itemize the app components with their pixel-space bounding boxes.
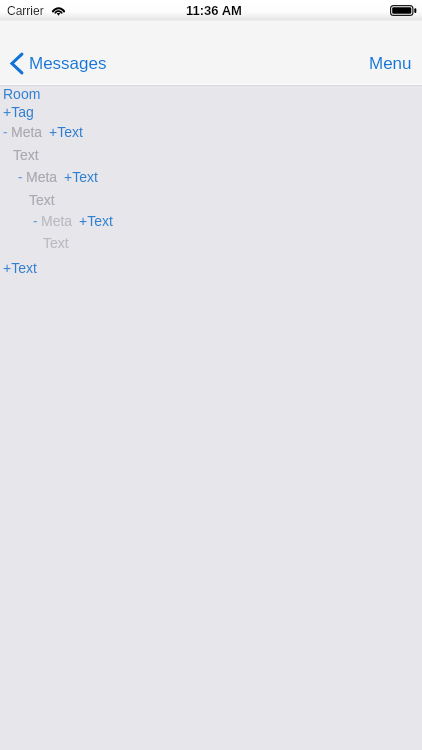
staticText: Text bbox=[29, 192, 55, 208]
button[interactable]: Menu bbox=[360, 44, 422, 82]
button[interactable]: - bbox=[18, 169, 422, 186]
staticText: +Text bbox=[79, 213, 113, 229]
button[interactable]: Messages bbox=[5, 44, 117, 82]
button[interactable]: Text bbox=[29, 192, 422, 209]
staticText: Text bbox=[13, 147, 39, 163]
staticText: Menu bbox=[369, 54, 412, 73]
button[interactable]: - bbox=[3, 124, 422, 141]
staticText: Text bbox=[43, 235, 69, 251]
staticText: Meta bbox=[41, 213, 73, 229]
staticText: +Tag bbox=[3, 104, 34, 120]
staticText: +Text bbox=[49, 124, 83, 140]
button[interactable]: Text bbox=[43, 235, 422, 252]
button[interactable]: - bbox=[33, 213, 422, 230]
button[interactable]: +Text bbox=[3, 260, 422, 277]
staticText: Room bbox=[3, 86, 41, 102]
button[interactable]: Text bbox=[13, 147, 422, 164]
staticText: - bbox=[3, 124, 8, 140]
staticText: Messages bbox=[29, 54, 107, 73]
staticText: - bbox=[33, 213, 38, 229]
staticText: 11:36 AM bbox=[186, 3, 242, 18]
staticText: Meta bbox=[11, 124, 43, 140]
other: Battery bbox=[390, 5, 417, 16]
staticText: +Text bbox=[3, 260, 37, 276]
button[interactable]: Room bbox=[3, 86, 422, 103]
staticText: +Text bbox=[64, 169, 98, 185]
button[interactable]: +Tag bbox=[3, 104, 422, 121]
other: Wi-Fi bbox=[51, 4, 66, 15]
staticText: Carrier bbox=[7, 4, 44, 17]
staticText: Meta bbox=[26, 169, 58, 185]
staticText: - bbox=[18, 169, 23, 185]
